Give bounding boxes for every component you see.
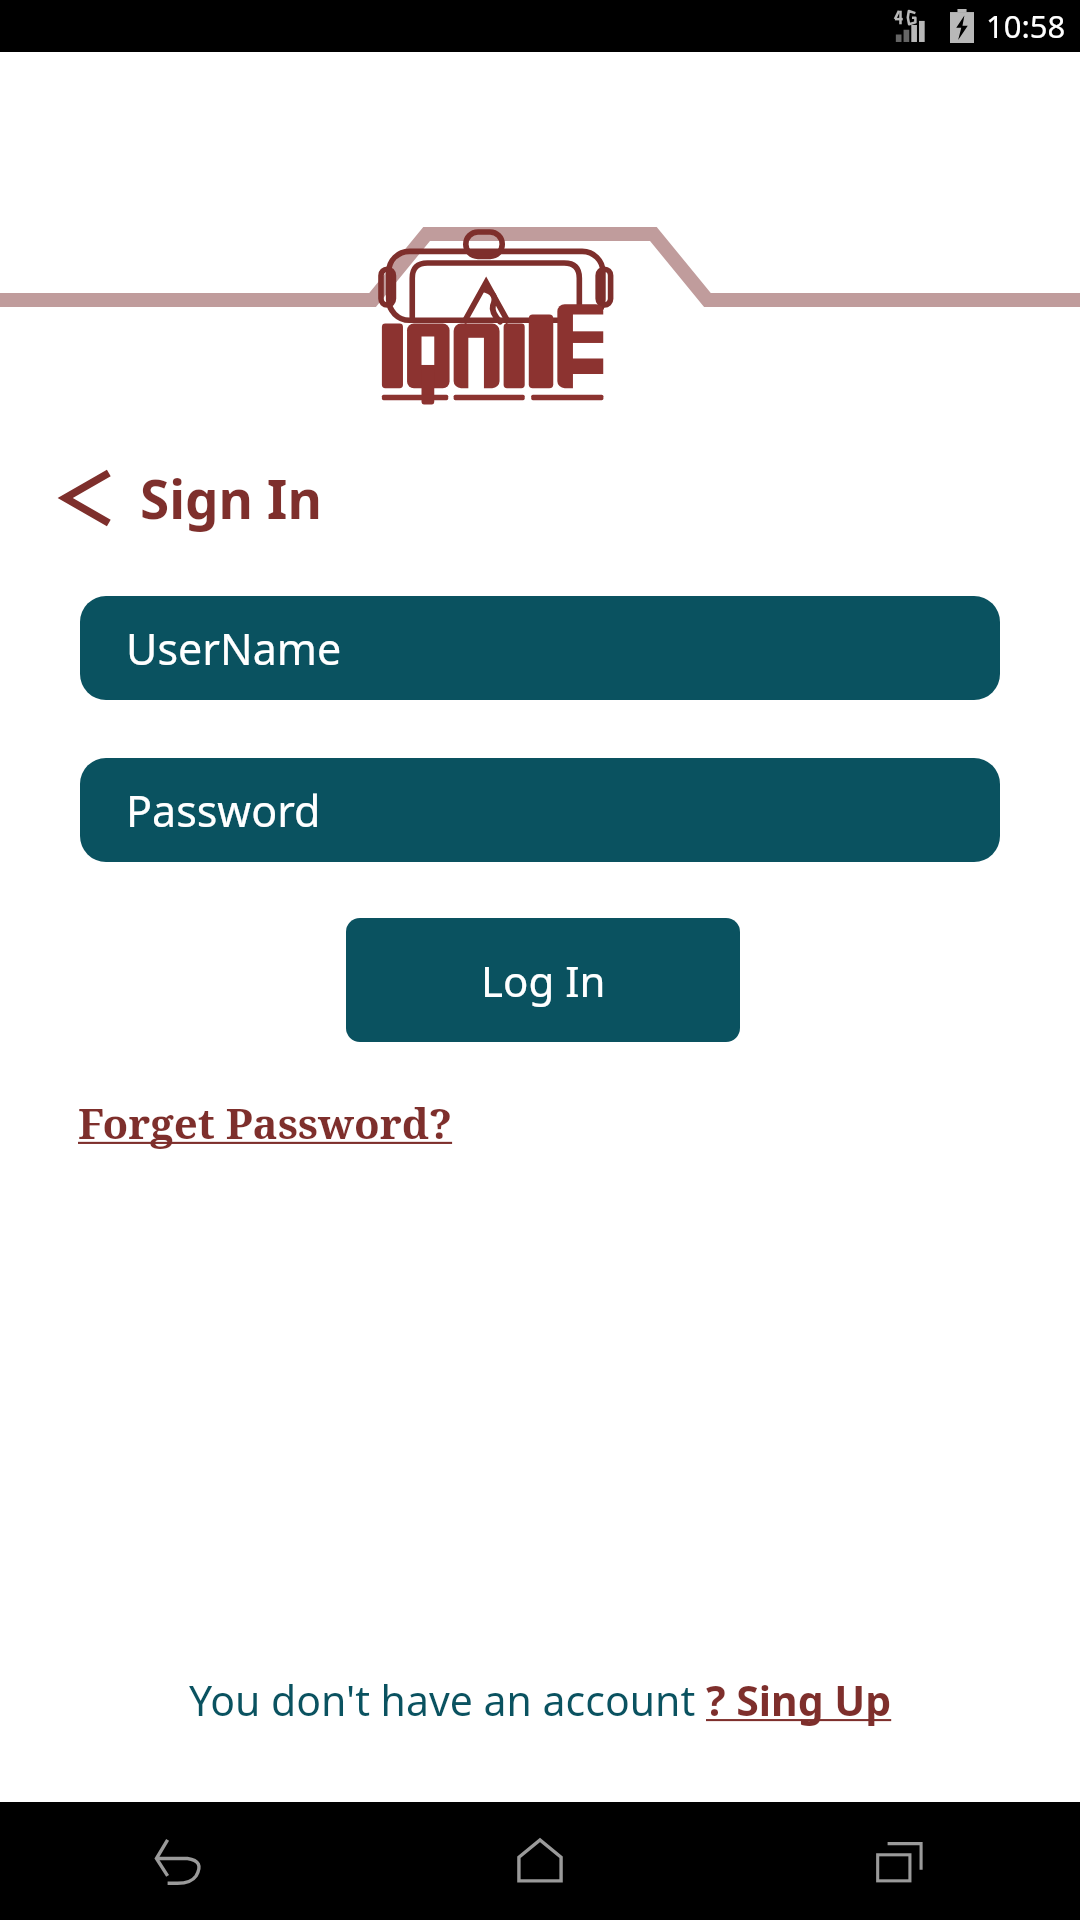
button[interactable]: ? Sing Up xyxy=(706,1672,892,1728)
staticText: Log In xyxy=(481,952,606,1009)
staticText: ? Sing Up xyxy=(706,1672,892,1728)
button[interactable]: Recent apps xyxy=(720,1802,1080,1920)
staticText: Password xyxy=(126,781,321,840)
button[interactable]: UserName xyxy=(80,596,1000,700)
staticText: You don't have an account xyxy=(189,1672,706,1728)
button[interactable]: Home xyxy=(360,1802,720,1920)
button[interactable]: Back xyxy=(0,1802,360,1920)
staticText: Forget Password? xyxy=(78,1094,453,1151)
staticText: UserName xyxy=(126,619,342,678)
staticText: 10:58 xyxy=(986,5,1066,47)
button[interactable]: Back xyxy=(56,462,322,534)
button[interactable]: Forget Password? xyxy=(78,1094,453,1151)
button[interactable]: Log In xyxy=(346,918,740,1042)
other: Back xyxy=(56,465,122,531)
staticText: Sign In xyxy=(140,462,322,534)
button[interactable]: Password xyxy=(80,758,1000,862)
